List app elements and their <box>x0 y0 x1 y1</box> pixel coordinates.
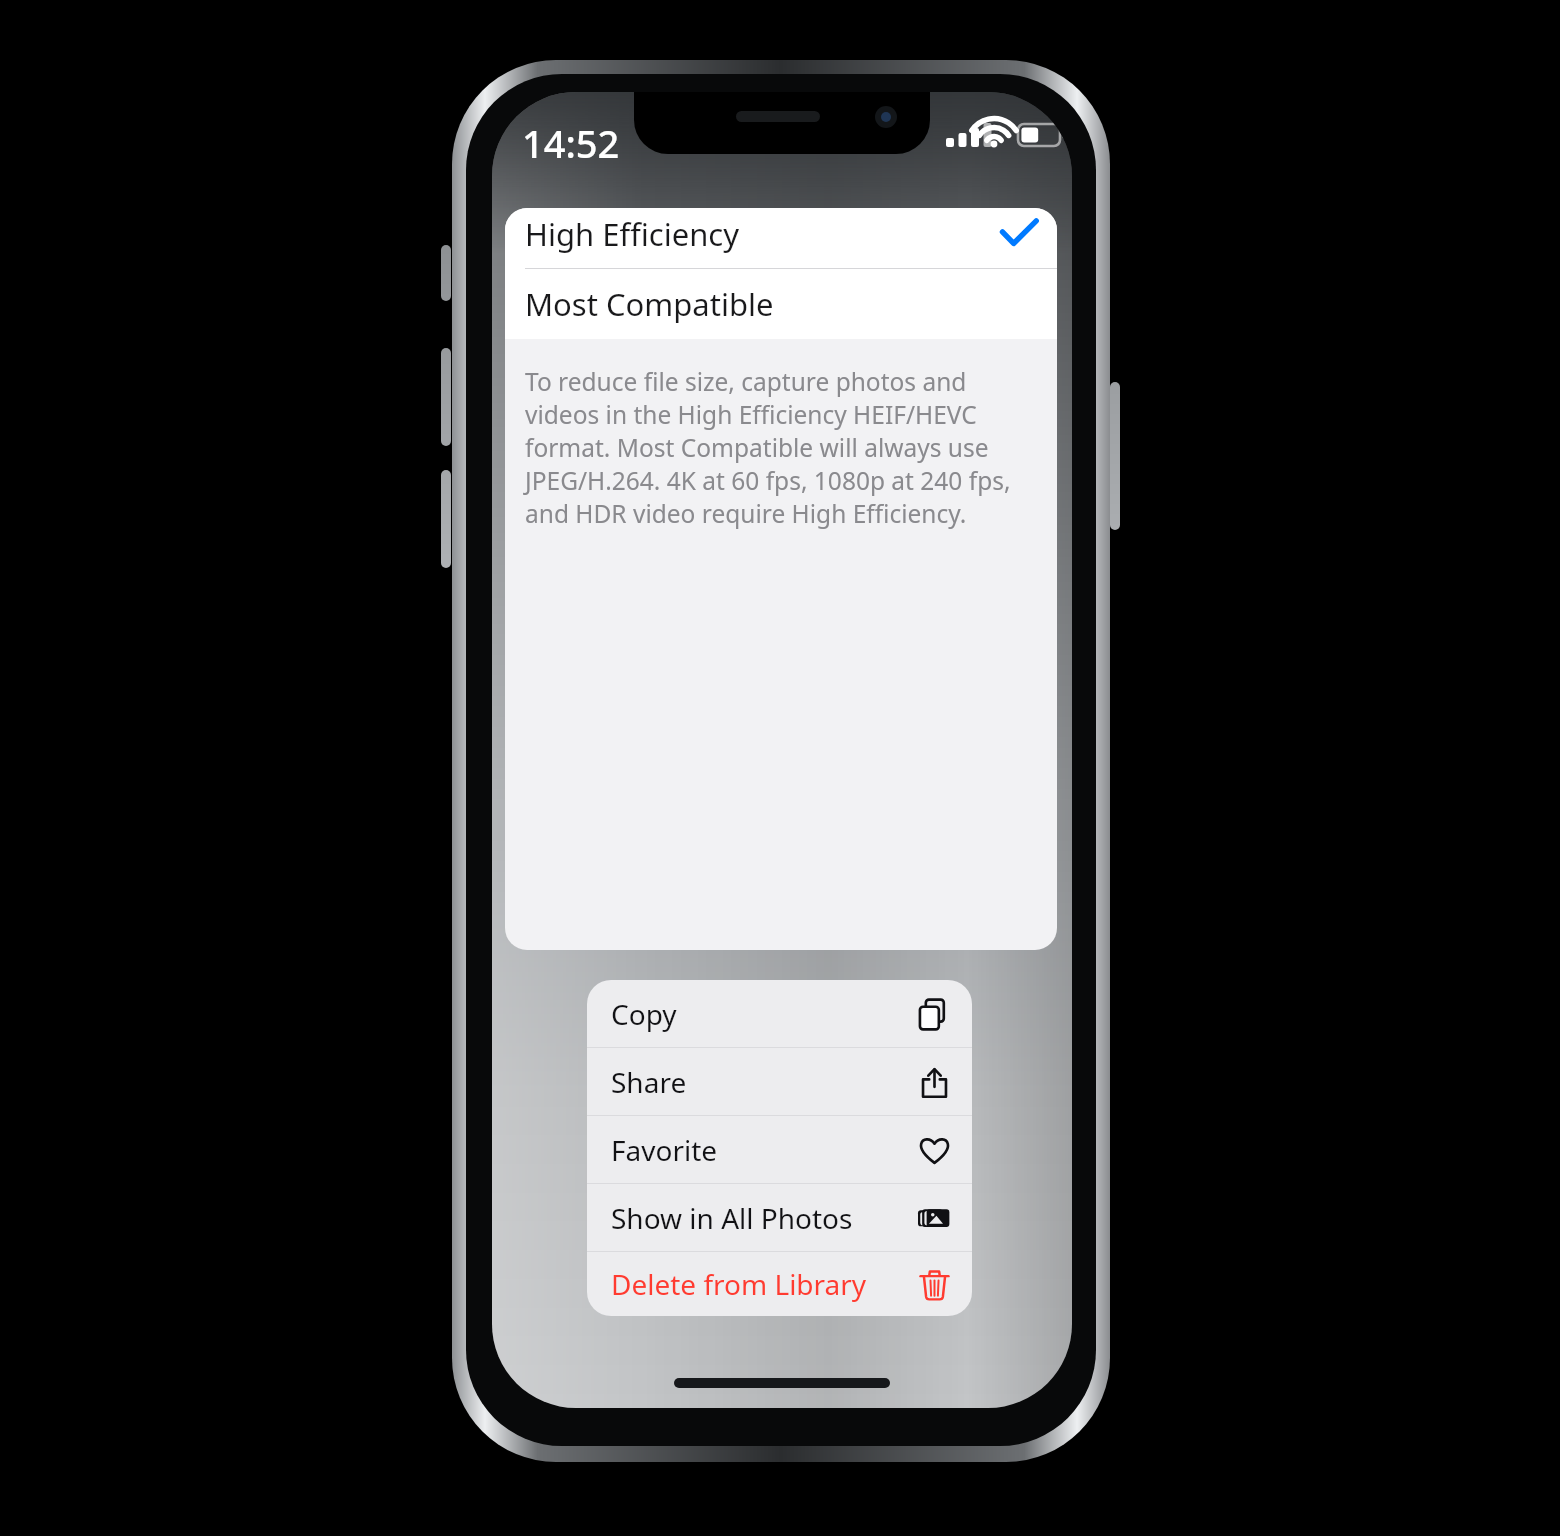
staticText: High Efficiency <box>525 213 740 255</box>
other: Favorite <box>919 1135 950 1166</box>
button[interactable]: Favorite <box>587 1116 972 1183</box>
button[interactable]: Show in All Photos <box>587 1184 972 1251</box>
staticText: 14:52 <box>522 117 620 169</box>
other: Share <box>919 1067 950 1098</box>
staticText: Favorite <box>611 1131 918 1169</box>
staticText: Show in All Photos <box>611 1199 918 1237</box>
button[interactable]: Share <box>587 1048 972 1115</box>
staticText: Delete from Library <box>611 1265 918 1303</box>
staticText: Share <box>611 1063 918 1101</box>
button[interactable]: Copy <box>587 980 972 1047</box>
staticText: To reduce file size, capture photos and … <box>525 365 1035 530</box>
other: Show in All Photos <box>918 1202 950 1234</box>
staticText: Most Compatible <box>525 283 774 325</box>
button[interactable]: Most Compatible <box>505 269 1057 339</box>
button[interactable]: High Efficiency <box>505 208 1057 268</box>
button[interactable]: Delete from Library <box>587 1252 972 1316</box>
other: Copy <box>919 999 950 1030</box>
staticText: Copy <box>611 995 918 1033</box>
other: Delete from Library <box>919 1269 950 1300</box>
